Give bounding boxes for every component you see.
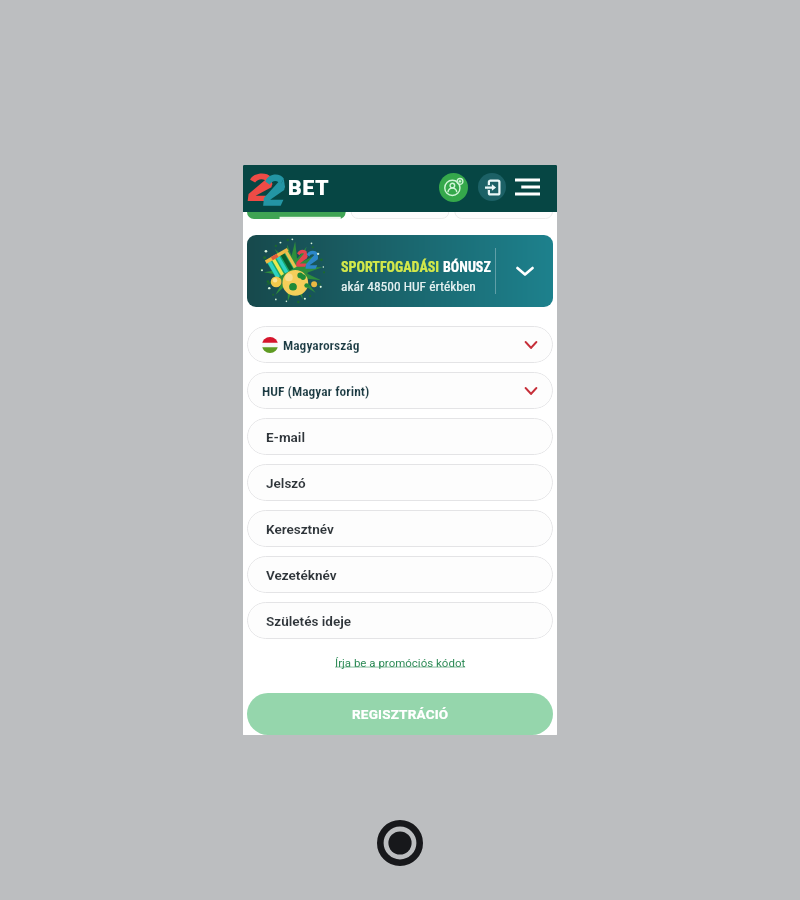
staticText: Jelszó: [266, 475, 306, 491]
button[interactable]: Register: [439, 173, 468, 202]
staticText: HUF (Magyar forint): [262, 383, 370, 399]
button[interactable]: HUF (Magyar forint): [247, 372, 553, 409]
staticText: E-mail: [266, 429, 305, 445]
button[interactable]: Születés ideje: [247, 602, 553, 639]
button[interactable]: REGISZTRÁCIÓ: [247, 693, 553, 735]
staticText: Keresztnév: [266, 521, 334, 537]
button[interactable]: Magyarország: [247, 326, 553, 363]
button[interactable]: Írja be a promóciós kódot: [331, 652, 470, 673]
staticText: BÓNUSZ: [443, 259, 491, 275]
staticText: BET: [288, 176, 330, 201]
button[interactable]: Log in: [478, 173, 506, 201]
staticText: Magyarország: [283, 337, 360, 353]
button[interactable]: Keresztnév: [247, 510, 553, 547]
button[interactable]: Record: [376, 819, 424, 867]
button[interactable]: Jelszó: [247, 464, 553, 501]
button[interactable]: E-mail: [247, 418, 553, 455]
button[interactable]: Menu: [515, 175, 540, 199]
staticText: Születés ideje: [266, 613, 352, 629]
staticText: SPORTFOGADÁSI: [341, 259, 443, 275]
button[interactable]: SPORTFOGADÁSI: [247, 235, 553, 307]
staticText: akár 48500 HUF értékben: [341, 278, 476, 294]
button[interactable]: Vezetéknév: [247, 556, 553, 593]
staticText: Vezetéknév: [266, 567, 337, 583]
staticText: REGISZTRÁCIÓ: [352, 706, 449, 722]
